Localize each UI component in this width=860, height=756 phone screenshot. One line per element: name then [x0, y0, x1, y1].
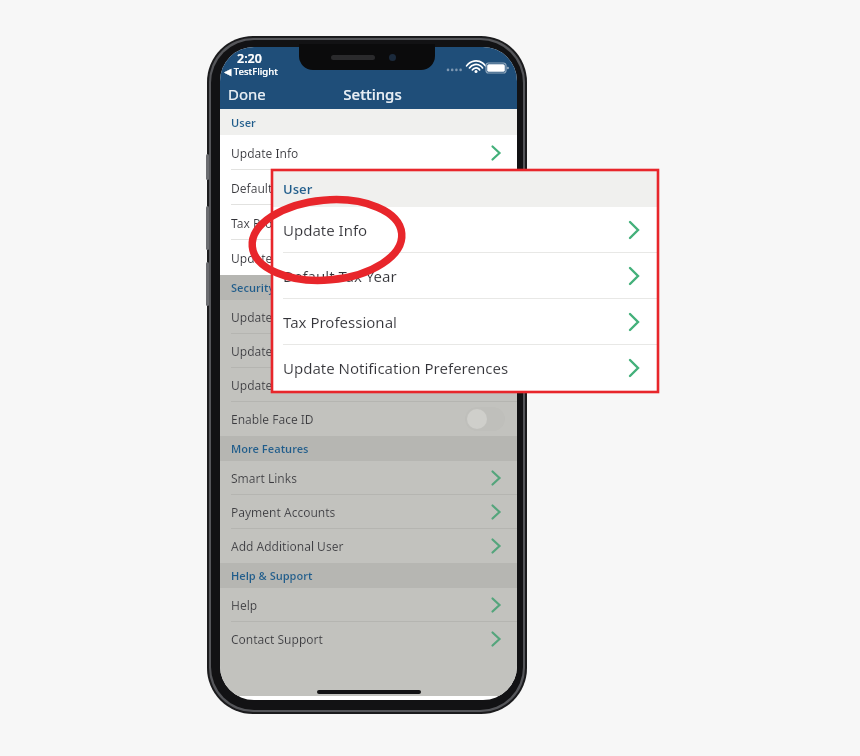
button[interactable]: Tax Professional: [272, 299, 658, 345]
staticText: Update Security Questions: [231, 377, 381, 393]
staticText: Update Info: [283, 220, 368, 240]
button[interactable]: Contact Support: [220, 622, 517, 656]
button[interactable]: Default Tax Year: [272, 253, 658, 299]
staticText: Update Password: [231, 343, 330, 359]
button[interactable]: Update Info: [272, 207, 658, 253]
staticText: Enable Face ID: [231, 411, 314, 427]
staticText: Payment Accounts: [231, 504, 336, 520]
staticText: Tax Professional: [283, 312, 397, 332]
button[interactable]: Help: [220, 588, 517, 622]
button[interactable]: Update Notification Preferences: [272, 345, 658, 391]
button[interactable]: Update Password: [220, 334, 517, 368]
staticText: Done: [228, 84, 266, 104]
button[interactable]: Update Notification Preferences: [220, 240, 517, 275]
button[interactable]: Done: [228, 79, 266, 109]
staticText: Tax Professional: [231, 215, 323, 231]
staticText: Update Notification Preferences: [231, 250, 412, 266]
staticText: User: [283, 180, 313, 198]
button[interactable]: Add Additional User: [220, 529, 517, 563]
button[interactable]: Smart Links: [220, 461, 517, 495]
staticText: Add Additional User: [231, 538, 344, 554]
staticText: Security: [231, 280, 275, 295]
staticText: User: [231, 115, 256, 130]
staticText: More Features: [231, 441, 309, 456]
staticText: Update Info: [231, 145, 299, 161]
staticText: Update Username: [231, 309, 334, 325]
staticText: Default Tax Year: [231, 180, 322, 196]
staticText: Contact Support: [231, 631, 323, 647]
button[interactable]: Update Info: [220, 135, 517, 170]
staticText: Help & Support: [231, 568, 313, 583]
staticText: Smart Links: [231, 470, 297, 486]
staticText: ◀ TestFlight: [224, 65, 278, 78]
button[interactable]: Default Tax Year: [220, 170, 517, 205]
button[interactable]: Enable Face ID: [220, 402, 517, 436]
staticText: 2:20: [237, 50, 262, 67]
staticText: Help: [231, 597, 258, 613]
staticText: Default Tax Year: [283, 266, 397, 286]
button[interactable]: Enable Face ID toggle: [465, 407, 505, 431]
button[interactable]: Payment Accounts: [220, 495, 517, 529]
button[interactable]: Update Username: [220, 300, 517, 334]
button[interactable]: Update Security Questions: [220, 368, 517, 402]
staticText: Update Notification Preferences: [283, 358, 509, 378]
button[interactable]: Tax Professional: [220, 205, 517, 240]
staticText: Settings: [343, 84, 402, 104]
